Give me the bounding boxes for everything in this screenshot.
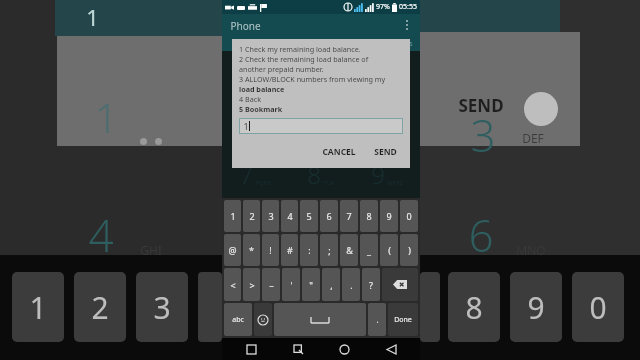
staticText: 7 [346, 210, 352, 222]
staticText: 8 [366, 210, 372, 222]
staticText: WXYZ [387, 179, 403, 187]
button[interactable]: & [340, 234, 358, 266]
button[interactable]: Home [327, 338, 361, 360]
button[interactable]: Contacts [300, 36, 340, 51]
staticText: 2 [249, 210, 255, 222]
staticText: – [269, 279, 274, 291]
staticText: " [309, 279, 313, 291]
button[interactable]: : [300, 234, 318, 266]
button[interactable]: # [281, 234, 298, 266]
button[interactable]: @ [224, 234, 241, 266]
button[interactable]: Back [374, 338, 408, 360]
staticText: ; [328, 244, 331, 256]
button[interactable]: 8 [360, 200, 378, 232]
staticText: CANCEL [322, 146, 356, 158]
staticText: 8 [307, 158, 321, 191]
staticText: 4 Back [239, 94, 261, 104]
button[interactable]: 0 [400, 200, 418, 232]
button[interactable]: Backspace [382, 268, 418, 301]
button[interactable]: " [302, 268, 320, 301]
staticText: 05:55 [399, 2, 417, 12]
staticText: : [308, 244, 311, 256]
staticText: 5 [309, 111, 323, 144]
button[interactable]: ( [380, 234, 398, 266]
button[interactable]: Done [388, 303, 418, 336]
staticText: ! [269, 244, 272, 256]
button[interactable]: 7 [222, 151, 288, 198]
button[interactable]: . [342, 268, 360, 301]
staticText: 1 [243, 120, 249, 132]
button[interactable]: Dialer [222, 36, 261, 51]
staticText: 1 Check my remaining load balance. [239, 44, 361, 54]
button[interactable]: Call logs [261, 36, 300, 51]
button[interactable]: Groups [380, 36, 420, 51]
staticText: Dialer [232, 39, 252, 49]
button[interactable]: 2 [243, 200, 260, 232]
button[interactable]: Recents [234, 338, 268, 360]
staticText: ( [388, 244, 391, 256]
button[interactable]: 6 [320, 200, 338, 232]
button[interactable]: abc [224, 303, 252, 336]
button[interactable]: 7 [340, 200, 358, 232]
staticText: ) [408, 244, 411, 256]
button[interactable]: – [262, 268, 280, 301]
button[interactable]: 5 [288, 104, 354, 151]
staticText: Call logs [267, 39, 295, 49]
staticText: 8 [465, 287, 483, 328]
button[interactable]: 1 [239, 118, 403, 134]
button[interactable]: ? [362, 268, 380, 301]
button[interactable]: CANCEL [316, 143, 362, 161]
staticText: 4 [242, 111, 256, 144]
staticText: 1 [86, 2, 99, 32]
button[interactable]: 4 [281, 200, 298, 232]
button[interactable]: > [243, 268, 260, 301]
staticText: 6 [468, 205, 494, 265]
button[interactable]: 5 [300, 200, 318, 232]
button[interactable]: , [322, 268, 340, 301]
button[interactable]: 6 [354, 104, 420, 151]
staticText: 5 Bookmark [239, 104, 283, 114]
staticText: 5 [306, 210, 312, 222]
button[interactable]: ' [282, 268, 300, 301]
button[interactable]: Emoji [254, 303, 272, 336]
button[interactable]: ) [400, 234, 418, 266]
staticText: Groups [388, 39, 413, 49]
button[interactable]: Favourites [340, 36, 380, 51]
button[interactable]: _ [360, 234, 378, 266]
staticText: 4 [287, 210, 293, 222]
staticText: 1 [248, 64, 262, 97]
staticText: ? [369, 279, 373, 291]
staticText: 9 [386, 210, 392, 222]
button[interactable]: < [224, 268, 241, 301]
staticText: 3 [374, 64, 388, 97]
button[interactable]: 4 [222, 104, 288, 151]
staticText: SEND [374, 146, 397, 158]
button[interactable]: Search [281, 338, 315, 360]
staticText: Phone [230, 19, 261, 33]
button[interactable]: ! [262, 234, 279, 266]
button[interactable]: ; [320, 234, 338, 266]
button[interactable]: SEND [368, 143, 403, 161]
staticText: . [376, 314, 379, 325]
button[interactable]: More options [402, 16, 412, 34]
staticText: 0 [589, 287, 607, 328]
button[interactable]: 9 [354, 151, 420, 198]
button[interactable]: 2 [288, 57, 354, 104]
staticText: 1 [29, 287, 47, 328]
button[interactable]: 8 [288, 151, 354, 198]
staticText: 3 [268, 210, 274, 222]
button[interactable]: 3 [262, 200, 279, 232]
button[interactable]: 1 [224, 200, 241, 232]
staticText: 1 [230, 210, 236, 222]
button[interactable]: * [243, 234, 260, 266]
staticText: DEF [522, 130, 544, 146]
staticText: GHI [258, 132, 269, 140]
staticText: 3 [470, 105, 496, 165]
staticText: TUV [323, 179, 335, 187]
button[interactable]: 1 [222, 57, 288, 104]
button[interactable]: 3 [354, 57, 420, 104]
button[interactable]: . [368, 303, 386, 336]
button[interactable]: Space [274, 303, 366, 336]
button[interactable]: 9 [380, 200, 398, 232]
staticText: 6 [372, 111, 386, 144]
